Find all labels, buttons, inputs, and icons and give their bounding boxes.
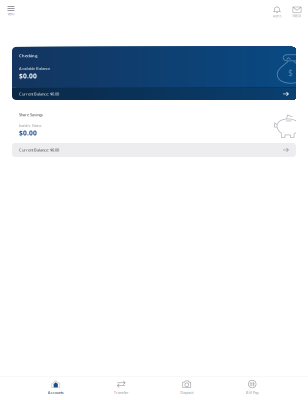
staticText: Current Balance: $0.00 [19, 91, 59, 97]
button[interactable]: Bill Pay [219, 380, 285, 395]
button[interactable]: Deposit [154, 380, 219, 395]
staticText: Transfer [114, 390, 129, 395]
staticText: $0.00 [19, 72, 37, 80]
button[interactable]: $ [12, 47, 296, 100]
staticText: Available Balance [19, 66, 50, 71]
button[interactable]: Transfer [88, 380, 154, 395]
button[interactable]: Accounts [23, 380, 88, 395]
staticText: ALERTS [273, 14, 281, 18]
staticText: Share Savings [19, 112, 43, 117]
button[interactable]: Share Savings [12, 107, 296, 157]
button[interactable]: MENU [4, 6, 18, 16]
staticText: Accounts [48, 390, 64, 395]
staticText: $0.00 [19, 129, 37, 137]
staticText: Bill Pay [246, 390, 259, 395]
staticText: Deposit [180, 390, 193, 395]
button[interactable]: Inbox [290, 6, 304, 18]
staticText: Checking [19, 53, 38, 58]
staticText: Current Balance: $0.00 [19, 147, 59, 153]
staticText: Available Balance [19, 124, 42, 128]
staticText: INBOX [292, 14, 301, 18]
staticText: MENU [7, 12, 14, 16]
staticText: $ [288, 68, 293, 78]
button[interactable]: Alerts [270, 6, 284, 18]
